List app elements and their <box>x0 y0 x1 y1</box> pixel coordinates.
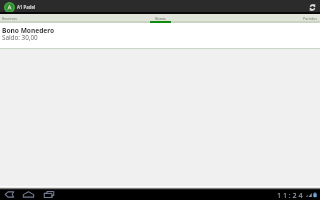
staticText: A1 Padel <box>17 4 36 10</box>
button[interactable]: Recent apps <box>43 189 54 200</box>
staticText: 11:24 <box>277 190 305 200</box>
button[interactable]: Partidos <box>303 16 320 21</box>
staticText: Bono Monedero <box>2 26 55 35</box>
staticText: Saldo: 30,00 <box>2 33 38 42</box>
button[interactable]: Bono Monedero <box>0 23 320 48</box>
button[interactable]: Refresh <box>307 2 317 12</box>
button[interactable]: Reservas <box>0 16 18 21</box>
button[interactable]: Back <box>4 189 15 200</box>
button[interactable]: Home <box>23 189 34 200</box>
button[interactable]: Bonos <box>155 16 166 21</box>
